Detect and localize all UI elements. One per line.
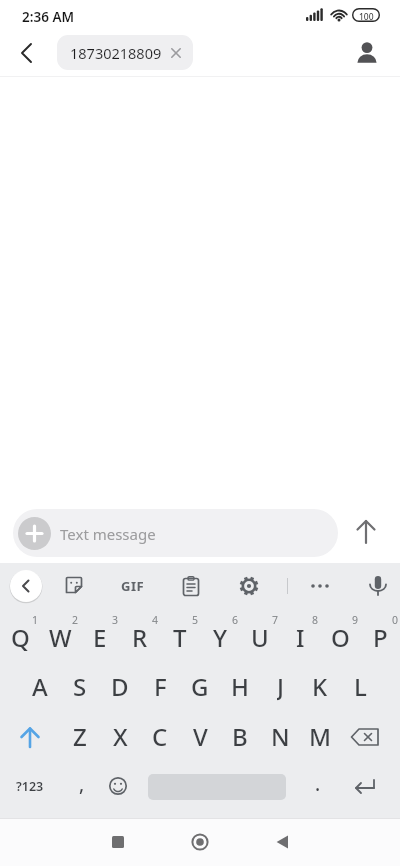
button[interactable]: S — [56, 670, 104, 702]
staticText: H — [231, 670, 249, 702]
button[interactable] — [267, 827, 297, 857]
button[interactable]: . — [294, 768, 342, 800]
button[interactable]: F — [136, 670, 184, 702]
staticText: Q — [11, 621, 30, 653]
button[interactable]: D — [96, 670, 144, 702]
button[interactable] — [304, 570, 336, 602]
staticText: 4 — [152, 613, 159, 627]
button[interactable] — [233, 570, 265, 602]
button[interactable]: I — [276, 621, 324, 653]
staticText: G — [191, 670, 209, 702]
staticText: T — [173, 621, 187, 653]
button[interactable]: J — [256, 670, 304, 702]
button[interactable] — [175, 570, 207, 602]
button[interactable]: X — [96, 720, 144, 752]
button[interactable]: M — [296, 720, 344, 752]
button[interactable]: N — [256, 720, 304, 752]
staticText: A — [32, 670, 48, 702]
staticText: ?123 — [16, 778, 44, 795]
button[interactable]: Q — [0, 621, 44, 653]
button[interactable] — [344, 770, 388, 802]
button[interactable]: B — [216, 720, 264, 752]
button[interactable]: W — [36, 621, 84, 653]
button[interactable] — [344, 721, 388, 753]
button[interactable] — [8, 721, 52, 753]
staticText: W — [49, 621, 72, 653]
button[interactable]: E — [76, 621, 124, 653]
button[interactable] — [185, 827, 215, 857]
staticText: U — [251, 621, 269, 653]
button[interactable]: T — [156, 621, 204, 653]
button[interactable]: Text message — [13, 509, 338, 557]
staticText: J — [277, 670, 284, 702]
staticText: Y — [213, 621, 228, 653]
staticText: 6 — [232, 613, 239, 627]
button[interactable] — [362, 570, 394, 602]
staticText: R — [132, 621, 148, 653]
staticText: 3 — [112, 613, 119, 627]
button[interactable]: V — [176, 720, 224, 752]
staticText: GIF — [121, 577, 145, 595]
button[interactable]: ?123 — [6, 770, 54, 802]
button[interactable]: K — [296, 670, 344, 702]
staticText: Text message — [60, 524, 156, 544]
button[interactable] — [10, 38, 40, 68]
staticText: 7 — [272, 613, 279, 627]
staticText: I — [296, 621, 305, 653]
staticText: 100 — [359, 11, 374, 23]
button[interactable] — [9, 569, 43, 603]
staticText: F — [154, 670, 167, 702]
staticText: 2:36 AM — [22, 8, 75, 26]
staticText: 8 — [312, 613, 319, 627]
staticText: L — [354, 670, 367, 702]
staticText: N — [271, 720, 290, 752]
staticText: . — [315, 771, 321, 797]
staticText: D — [111, 670, 129, 702]
button[interactable]: H — [216, 670, 264, 702]
staticText: V — [193, 720, 208, 752]
button[interactable]: L — [336, 670, 384, 702]
staticText: 0 — [392, 613, 399, 627]
button[interactable]: 18730218809 — [57, 35, 193, 70]
button[interactable] — [350, 516, 382, 548]
staticText: 9 — [352, 613, 359, 627]
button[interactable]: G — [176, 670, 224, 702]
button[interactable] — [100, 770, 136, 802]
staticText: 18730218809 — [70, 43, 162, 63]
staticText: E — [93, 621, 107, 653]
button[interactable]: U — [236, 621, 284, 653]
staticText: Z — [73, 720, 87, 752]
button[interactable]: O — [316, 621, 364, 653]
staticText: K — [312, 670, 328, 702]
button[interactable] — [103, 827, 133, 857]
staticText: 2 — [72, 613, 79, 627]
button[interactable] — [59, 570, 91, 602]
staticText: 5 — [192, 613, 199, 627]
staticText: P — [373, 621, 388, 653]
staticText: O — [331, 621, 350, 653]
button[interactable]: , — [58, 768, 106, 800]
button[interactable] — [352, 38, 382, 68]
button[interactable]: R — [116, 621, 164, 653]
staticText: , — [79, 771, 85, 797]
button[interactable]: P — [356, 621, 400, 653]
button[interactable]: C — [136, 720, 184, 752]
button[interactable]: A — [16, 670, 64, 702]
button[interactable]: GIF — [113, 570, 153, 602]
staticText: B — [232, 720, 248, 752]
staticText: M — [309, 720, 332, 752]
staticText: 1 — [32, 613, 39, 627]
button[interactable]: Y — [196, 621, 244, 653]
button[interactable]: Z — [56, 720, 104, 752]
staticText: S — [73, 670, 87, 702]
staticText: C — [152, 720, 168, 752]
staticText: X — [113, 720, 128, 752]
